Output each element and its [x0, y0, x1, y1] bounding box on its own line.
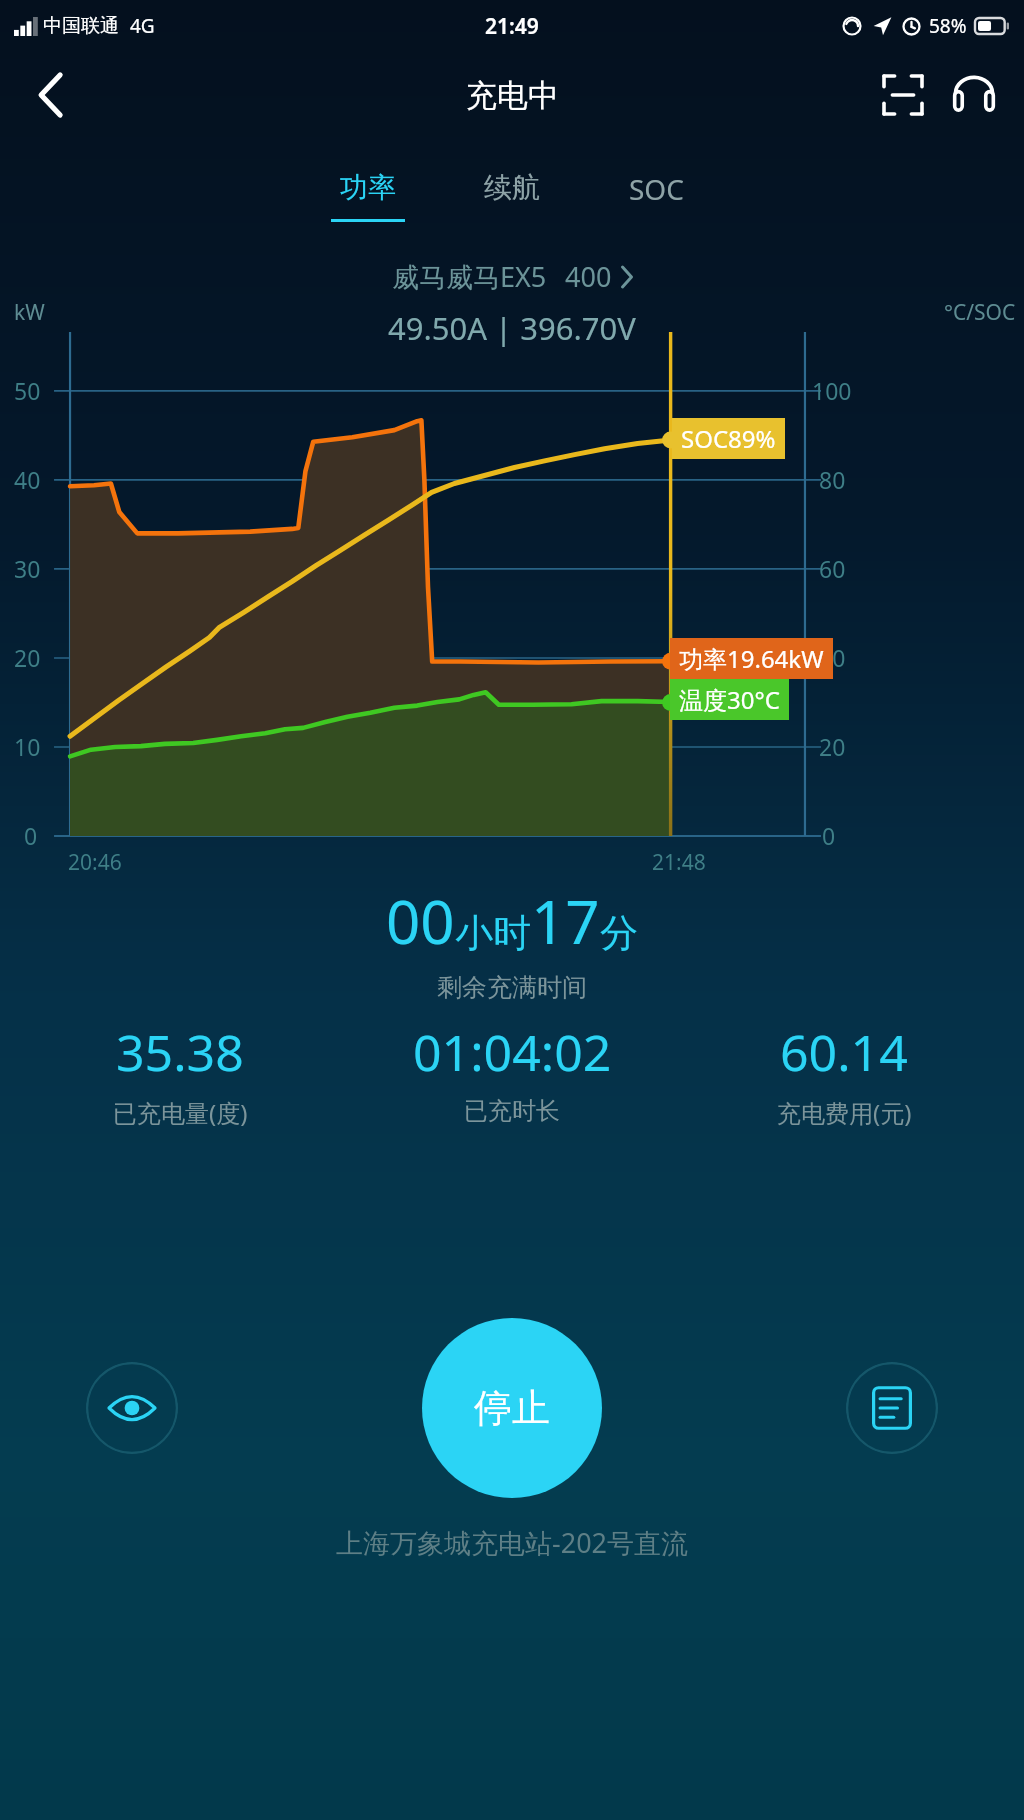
staticText: SOC [629, 170, 684, 208]
staticText: 已充时长 [464, 1096, 560, 1126]
staticText: 20 [819, 731, 846, 762]
staticText: 40 [14, 464, 41, 495]
button[interactable]: 威马威马EX5 [0, 258, 1024, 349]
staticText: 10 [14, 731, 41, 762]
staticText: 4G [130, 13, 155, 39]
staticText: 60.14 [780, 1018, 908, 1086]
button[interactable]: SOC [609, 166, 703, 229]
staticText: 49.50A | 396.70V [388, 307, 636, 349]
button[interactable]: 停止 [422, 1318, 602, 1498]
staticText: 21:49 [485, 12, 539, 41]
staticText: °C/SOC [944, 298, 1016, 327]
staticText: 20 [14, 642, 41, 673]
staticText: 30 [14, 553, 41, 584]
button[interactable]: 60.14 [678, 1018, 1010, 1129]
staticText: 功率 [340, 170, 396, 205]
staticText: 50 [14, 375, 41, 406]
button[interactable]: Customer support [942, 63, 1006, 127]
button[interactable]: 续航 [465, 166, 559, 226]
staticText: 续航 [484, 170, 540, 205]
staticText: 80 [819, 464, 846, 495]
staticText: 威马威马EX5 [392, 258, 547, 295]
button[interactable]: 功率 [321, 166, 415, 226]
staticText: 0 [24, 820, 38, 851]
button[interactable]: 01:04:02 [346, 1018, 678, 1126]
staticText: 21:48 [652, 848, 706, 877]
staticText: 100 [812, 375, 852, 406]
staticText: 60 [819, 553, 846, 584]
staticText: 17 [531, 880, 600, 962]
button[interactable]: Order record [846, 1362, 938, 1454]
staticText: 停止 [474, 1384, 550, 1432]
staticText: 01:04:02 [413, 1018, 612, 1086]
staticText: 40 [819, 642, 846, 673]
staticText: 充电费用(元) [777, 1096, 912, 1129]
button[interactable]: Live view [86, 1362, 178, 1454]
staticText: 充电中 [466, 76, 559, 115]
button[interactable]: Scan code [872, 64, 934, 126]
staticText: 00 [386, 880, 455, 962]
button[interactable]: Back [18, 62, 84, 128]
staticText: SOC89% [681, 422, 776, 455]
staticText: kW [14, 298, 45, 327]
staticText: 上海万象城充电站-202号直流 [336, 1524, 689, 1561]
staticText: 温度30°C [679, 683, 780, 716]
staticText: 小时 [455, 909, 531, 957]
staticText: 58% [929, 13, 967, 39]
staticText: 功率19.64kW [679, 642, 824, 675]
staticText: 已充电量(度) [113, 1096, 248, 1129]
staticText: 分 [600, 909, 638, 957]
button[interactable]: 35.38 [14, 1018, 346, 1129]
staticText: 400 [565, 258, 612, 295]
staticText: 剩余充满时间 [437, 972, 587, 1003]
staticText: 0 [822, 820, 836, 851]
staticText: 中国联通 [43, 14, 119, 38]
staticText: 35.38 [116, 1018, 244, 1086]
staticText: 20:46 [68, 848, 122, 877]
